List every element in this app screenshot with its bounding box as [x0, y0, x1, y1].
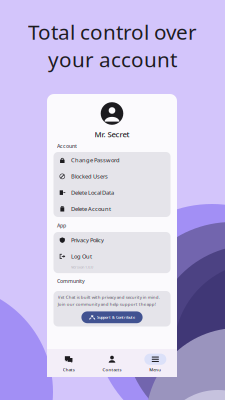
staticText: Total control over — [28, 18, 197, 45]
button[interactable]: Contacts — [90, 354, 134, 372]
button[interactable]: Delete Local Data — [53, 184, 170, 201]
staticText: Menu — [149, 367, 161, 372]
staticText: Join our community and help support the … — [58, 301, 156, 307]
button[interactable]: Log Out — [53, 248, 170, 264]
staticText: Mr. Secret — [94, 129, 129, 139]
staticText: your account — [48, 45, 177, 73]
button[interactable]: Chats — [47, 354, 90, 372]
staticText: Vet Chat is built with privacy and secur… — [58, 294, 160, 300]
staticText: Delete Account — [71, 205, 111, 213]
staticText: Support & Contribute — [97, 315, 135, 320]
staticText: Log Out — [71, 253, 92, 260]
staticText: Contacts — [102, 367, 121, 372]
staticText: Change Password — [71, 156, 120, 164]
staticText: Version 1.0.0 — [71, 264, 93, 270]
button[interactable]: Menu — [134, 354, 177, 372]
staticText: Delete Local Data — [71, 189, 114, 196]
button[interactable]: Change Password — [53, 152, 170, 168]
staticText: Community — [57, 277, 85, 284]
staticText: Chats — [63, 367, 75, 372]
staticText: Privacy Policy — [71, 236, 104, 244]
staticText: Account — [57, 142, 77, 149]
button[interactable]: Blocked Users — [53, 168, 170, 184]
button[interactable]: Privacy Policy — [53, 232, 170, 248]
staticText: Blocked Users — [71, 173, 108, 180]
button[interactable]: Support & Contribute — [81, 311, 143, 323]
button[interactable]: Delete Account — [53, 201, 170, 217]
staticText: App — [57, 222, 66, 229]
